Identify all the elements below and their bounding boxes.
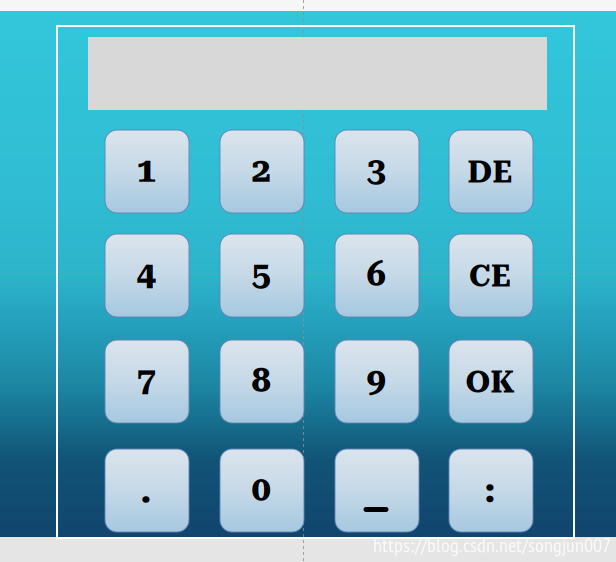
button[interactable] xyxy=(335,449,419,532)
button[interactable]: CE xyxy=(449,234,533,317)
button[interactable]: : xyxy=(449,449,533,532)
staticText: OK xyxy=(465,364,514,400)
button[interactable]: 7 xyxy=(105,340,189,423)
staticText: 3 xyxy=(366,150,385,190)
staticText: 6 xyxy=(366,254,385,294)
button[interactable]: 3 xyxy=(335,130,419,213)
staticText: 8 xyxy=(251,360,270,400)
button[interactable]: 0 xyxy=(220,449,304,532)
button[interactable]: DE xyxy=(449,130,533,213)
staticText: DE xyxy=(467,154,512,190)
staticText: . xyxy=(140,471,151,511)
button[interactable]: 4 xyxy=(105,234,189,317)
button[interactable]: 1 xyxy=(105,130,189,213)
staticText: 2 xyxy=(251,150,270,190)
staticText: : xyxy=(484,470,495,511)
staticText: 0 xyxy=(251,469,270,509)
staticText: 4 xyxy=(136,254,155,294)
staticText: 9 xyxy=(366,360,385,400)
button[interactable]: 9 xyxy=(335,340,419,423)
staticText: https://blog.csdn.net/songjun007 xyxy=(373,532,611,558)
button[interactable]: . xyxy=(105,449,189,532)
button[interactable]: 6 xyxy=(335,234,419,317)
staticText: 7 xyxy=(136,360,155,400)
staticText: 5 xyxy=(251,254,270,294)
button[interactable]: 5 xyxy=(220,234,304,317)
staticText: 1 xyxy=(136,150,155,190)
button[interactable]: 2 xyxy=(220,130,304,213)
button[interactable]: OK xyxy=(449,340,533,423)
staticText: CE xyxy=(469,258,511,294)
button[interactable]: 8 xyxy=(220,340,304,423)
